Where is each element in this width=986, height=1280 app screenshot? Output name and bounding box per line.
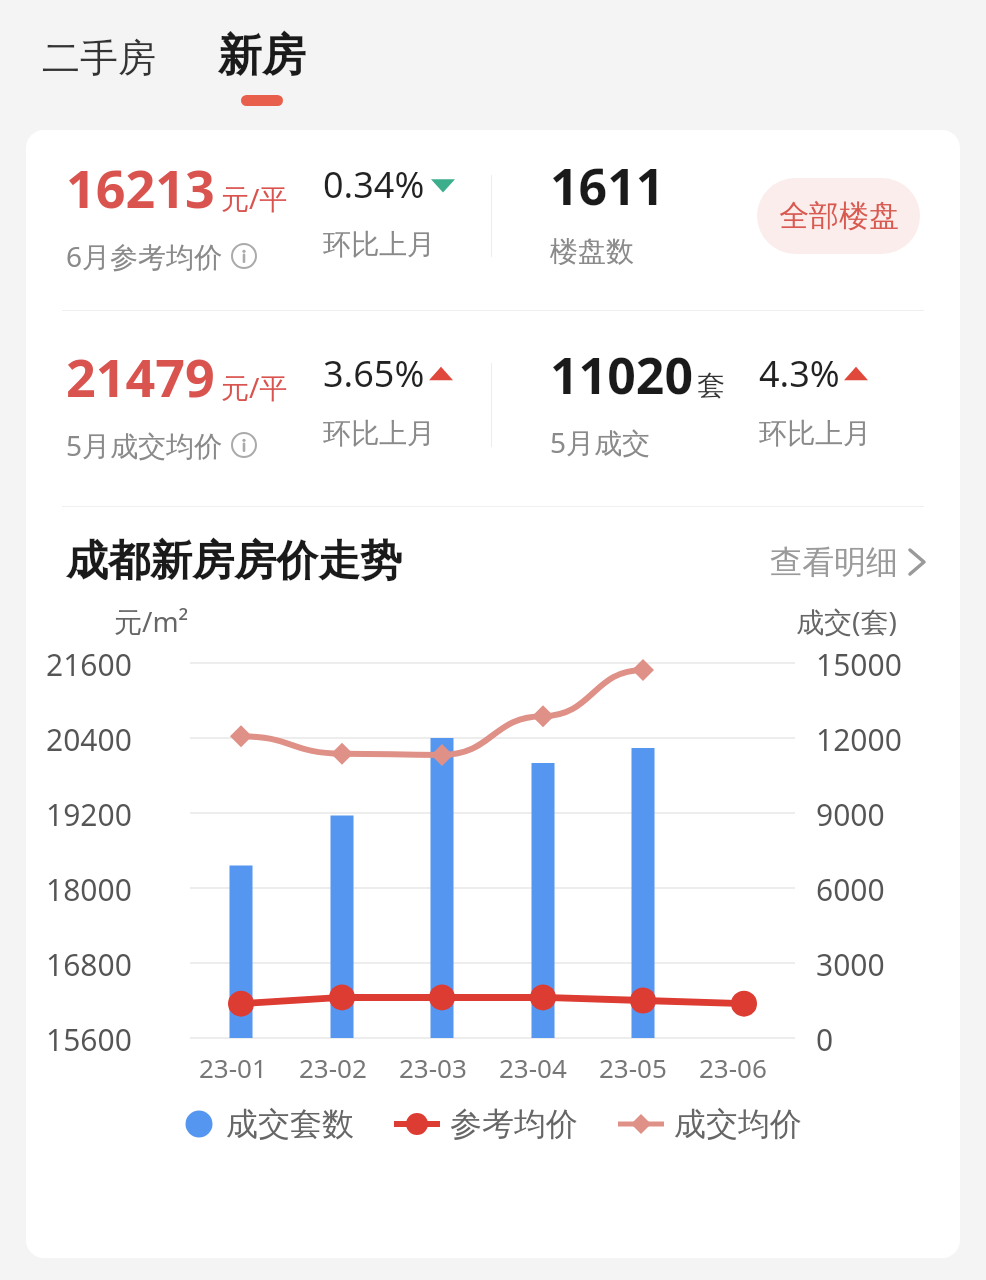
staticText: 楼盘数 <box>550 234 634 269</box>
button[interactable]: 新房 <box>218 0 306 106</box>
staticText: 成都新房房价走势 <box>66 535 402 588</box>
button[interactable]: 全部楼盘 <box>757 178 920 254</box>
staticText: 环比上月 <box>759 416 871 451</box>
staticText: 查看明细 <box>770 542 898 582</box>
staticText: 二手房 <box>42 34 156 82</box>
staticText: 3.65% <box>323 349 425 398</box>
staticText: 套 <box>697 368 725 403</box>
staticText: 成交(套) <box>796 602 897 640</box>
staticText: 0 <box>816 1019 834 1060</box>
staticText: 元/平 <box>221 179 288 217</box>
staticText: 0.34% <box>323 160 425 209</box>
staticText: 全部楼盘 <box>779 197 899 235</box>
staticText: 11020 <box>550 341 693 409</box>
staticText: 21600 <box>46 644 132 685</box>
staticText: 23-02 <box>299 1050 367 1085</box>
staticText: 1611 <box>550 152 665 220</box>
staticText: 4.3% <box>759 349 840 398</box>
staticText: 5月成交均价 <box>66 426 223 464</box>
staticText: 3000 <box>816 944 885 985</box>
staticText: 18000 <box>46 869 132 910</box>
staticText: 19200 <box>46 794 132 835</box>
staticText: 23-06 <box>699 1050 767 1085</box>
staticText: 15600 <box>46 1019 132 1060</box>
staticText: 6月参考均价 <box>66 237 223 275</box>
staticText: 参考均价 <box>450 1104 578 1144</box>
staticText: 5月成交 <box>550 423 651 461</box>
staticText: 16213 <box>66 152 215 223</box>
staticText: 12000 <box>816 719 902 760</box>
staticText: 16800 <box>46 944 132 985</box>
staticText: 环比上月 <box>323 416 435 451</box>
staticText: 新房 <box>218 28 306 83</box>
staticText: 成交套数 <box>226 1104 354 1144</box>
staticText: 成交均价 <box>674 1104 802 1144</box>
button[interactable]: 查看明细 <box>770 542 926 582</box>
button[interactable]: 二手房 <box>42 0 156 82</box>
staticText: 元/平 <box>221 368 288 406</box>
staticText: 15000 <box>816 644 902 685</box>
staticText: 23-01 <box>199 1050 267 1085</box>
staticText: 23-04 <box>499 1050 567 1085</box>
staticText: 21479 <box>66 341 215 412</box>
staticText: 23-05 <box>599 1050 667 1085</box>
staticText: 环比上月 <box>323 227 435 262</box>
staticText: 23-03 <box>399 1050 467 1085</box>
staticText: 20400 <box>46 719 132 760</box>
staticText: 9000 <box>816 794 885 835</box>
staticText: 6000 <box>816 869 885 910</box>
staticText: 元/m² <box>114 602 189 640</box>
